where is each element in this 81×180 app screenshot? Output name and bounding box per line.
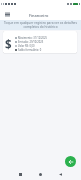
button[interactable]: Menu	[3, 10, 11, 18]
staticText: Financeiro	[29, 13, 49, 18]
staticText: Emissão: 29/10/2025	[18, 40, 44, 44]
button[interactable]: Back	[57, 171, 64, 178]
staticText: Saldo formulário: 0	[18, 48, 42, 52]
button[interactable]: Recents	[17, 171, 24, 178]
staticText: $	[5, 37, 12, 53]
button[interactable]: $	[3, 31, 77, 53]
button[interactable]: Voltar	[65, 156, 76, 167]
staticText: Movimento: 31/12/2025	[18, 36, 48, 40]
staticText: Valor R$: 0,00	[18, 44, 35, 48]
staticText: Toque em qualquer registro para ver os d…	[0, 21, 81, 29]
button[interactable]: Home	[37, 171, 44, 178]
